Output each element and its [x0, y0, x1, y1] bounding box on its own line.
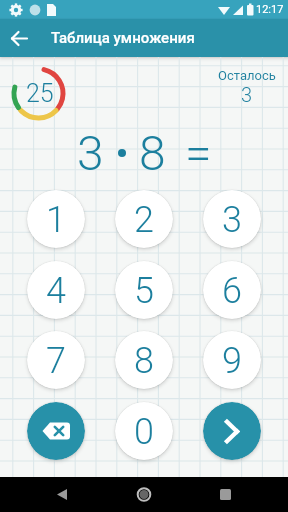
staticText: 7: [46, 340, 66, 382]
button[interactable]: 4: [27, 261, 85, 319]
button[interactable]: [203, 402, 261, 460]
button[interactable]: 5: [115, 261, 173, 319]
button[interactable]: 9: [203, 331, 261, 389]
button[interactable]: [192, 477, 288, 512]
button[interactable]: 8: [115, 331, 173, 389]
staticText: 6: [222, 270, 242, 312]
button[interactable]: 7: [27, 331, 85, 389]
staticText: 8: [139, 125, 166, 181]
button[interactable]: 0: [115, 402, 173, 460]
staticText: 8: [134, 340, 154, 382]
button[interactable]: 3: [203, 190, 261, 248]
button[interactable]: [96, 477, 192, 512]
staticText: 9: [222, 340, 242, 382]
button[interactable]: [0, 477, 96, 512]
staticText: 4: [46, 270, 66, 312]
staticText: 3: [77, 125, 104, 181]
staticText: 1: [46, 199, 66, 241]
staticText: Таблица умножения: [51, 29, 195, 47]
staticText: Осталось: [218, 68, 276, 83]
staticText: 12:17: [256, 3, 284, 16]
button[interactable]: 2: [115, 190, 173, 248]
staticText: 25: [26, 79, 54, 108]
button[interactable]: 6: [203, 261, 261, 319]
staticText: 3: [241, 83, 253, 106]
staticText: 3: [222, 199, 242, 241]
button[interactable]: [27, 402, 85, 460]
button[interactable]: 1: [27, 190, 85, 248]
staticText: 5: [134, 270, 154, 312]
staticText: 0: [134, 411, 154, 453]
button[interactable]: [0, 19, 38, 57]
staticText: =: [185, 125, 212, 181]
staticText: 2: [134, 199, 154, 241]
